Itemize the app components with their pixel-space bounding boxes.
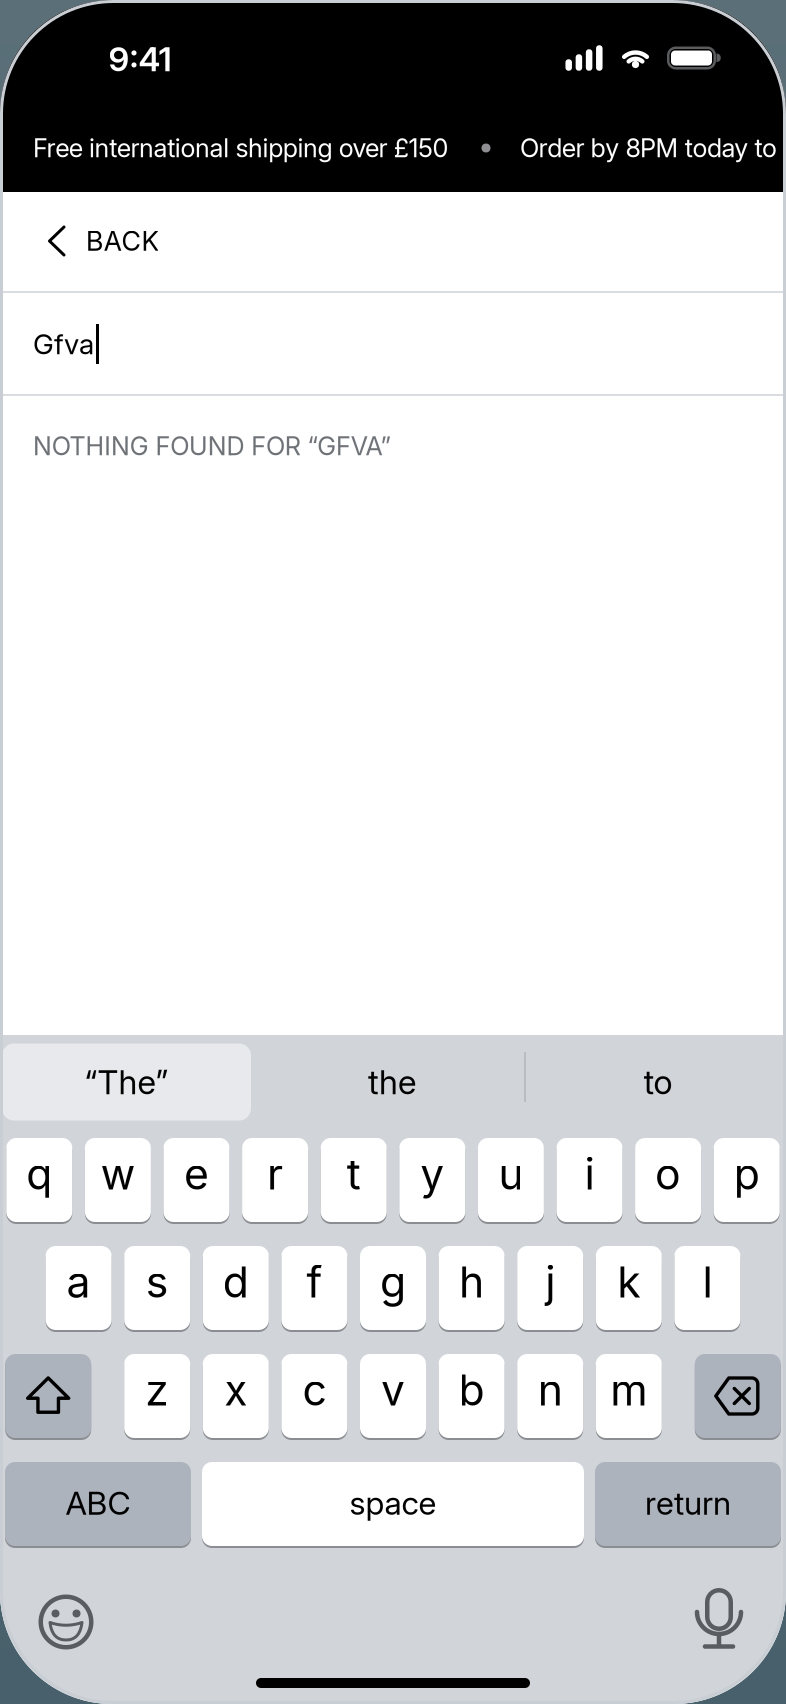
button[interactable]: l bbox=[674, 1245, 740, 1331]
button[interactable]: q bbox=[6, 1137, 72, 1223]
button[interactable]: z bbox=[124, 1353, 190, 1439]
staticText: l bbox=[702, 1257, 712, 1307]
button[interactable]: b bbox=[439, 1353, 505, 1439]
staticText: t bbox=[347, 1149, 361, 1199]
button[interactable]: k bbox=[596, 1245, 662, 1331]
staticText: s bbox=[146, 1257, 169, 1307]
button[interactable]: r bbox=[242, 1137, 308, 1223]
staticText: e bbox=[184, 1149, 209, 1199]
staticText: r bbox=[267, 1149, 283, 1199]
staticText: “The” bbox=[84, 1062, 168, 1102]
staticText: 9:41 bbox=[108, 39, 171, 79]
staticText: the bbox=[368, 1062, 416, 1102]
staticText: m bbox=[610, 1365, 647, 1415]
button[interactable]: ABC bbox=[5, 1461, 191, 1547]
staticText: g bbox=[380, 1257, 406, 1307]
button[interactable]: s bbox=[124, 1245, 190, 1331]
button[interactable]: t bbox=[321, 1137, 387, 1223]
staticText: j bbox=[545, 1257, 555, 1307]
staticText: Gfva bbox=[33, 327, 94, 360]
button[interactable]: return bbox=[595, 1461, 781, 1547]
staticText: p bbox=[734, 1149, 760, 1199]
button[interactable]: “The” bbox=[2, 1043, 251, 1120]
staticText: b bbox=[459, 1365, 485, 1415]
staticText: return bbox=[645, 1484, 731, 1522]
button[interactable]: n bbox=[517, 1353, 583, 1439]
button[interactable]: h bbox=[439, 1245, 505, 1331]
staticText: h bbox=[459, 1257, 484, 1307]
staticText: Free international shipping over £150 bbox=[33, 133, 449, 163]
staticText: q bbox=[26, 1149, 52, 1199]
staticText: k bbox=[617, 1257, 640, 1307]
button[interactable]: j bbox=[517, 1245, 583, 1331]
button[interactable]: c bbox=[281, 1353, 347, 1439]
button[interactable]: BACK bbox=[48, 209, 786, 273]
button[interactable]: v bbox=[360, 1353, 426, 1439]
button[interactable]: d bbox=[203, 1245, 269, 1331]
button[interactable]: space bbox=[202, 1461, 584, 1547]
button[interactable] bbox=[5, 1353, 91, 1439]
button[interactable] bbox=[689, 1587, 749, 1648]
button[interactable]: p bbox=[714, 1137, 780, 1223]
button[interactable]: y bbox=[399, 1137, 465, 1223]
button[interactable]: x bbox=[203, 1353, 269, 1439]
button[interactable]: u bbox=[478, 1137, 544, 1223]
button[interactable]: o bbox=[635, 1137, 701, 1223]
button[interactable] bbox=[36, 1592, 96, 1652]
staticText: space bbox=[349, 1484, 436, 1522]
button[interactable]: Gfva bbox=[33, 296, 786, 392]
button[interactable]: a bbox=[46, 1245, 112, 1331]
button[interactable]: e bbox=[163, 1137, 229, 1223]
staticText: f bbox=[306, 1257, 322, 1307]
staticText: x bbox=[224, 1365, 247, 1415]
button[interactable]: g bbox=[360, 1245, 426, 1331]
staticText: y bbox=[420, 1149, 444, 1199]
staticText: o bbox=[655, 1149, 681, 1199]
staticText: c bbox=[302, 1365, 326, 1415]
staticText: Order by 8PM today to bbox=[520, 133, 777, 163]
staticText: ABC bbox=[65, 1484, 130, 1522]
staticText: v bbox=[381, 1365, 405, 1415]
button[interactable]: the bbox=[292, 1043, 492, 1120]
staticText: z bbox=[145, 1365, 169, 1415]
staticText: u bbox=[498, 1149, 523, 1199]
button[interactable]: i bbox=[556, 1137, 622, 1223]
staticText: NOTHING FOUND FOR “GFVA” bbox=[33, 431, 390, 461]
button[interactable] bbox=[695, 1353, 781, 1439]
button[interactable]: to bbox=[558, 1043, 758, 1120]
staticText: a bbox=[67, 1257, 91, 1307]
button[interactable]: w bbox=[85, 1137, 151, 1223]
staticText: w bbox=[100, 1149, 135, 1199]
staticText: i bbox=[584, 1149, 594, 1199]
button[interactable]: m bbox=[596, 1353, 662, 1439]
button[interactable]: f bbox=[281, 1245, 347, 1331]
staticText: BACK bbox=[86, 225, 159, 257]
staticText: to bbox=[643, 1062, 672, 1102]
staticText: n bbox=[538, 1365, 563, 1415]
staticText: d bbox=[223, 1257, 249, 1307]
